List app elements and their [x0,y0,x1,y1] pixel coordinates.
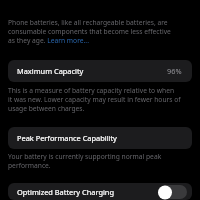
button[interactable]: Optimized Battery Charging toggle [158,185,187,199]
staticText: Your battery is currently supporting nor… [8,152,162,170]
button[interactable]: Maximum Capacity [8,60,192,82]
staticText: Peak Performance Capability [17,133,117,143]
button[interactable]: Peak Performance Capability [8,127,192,149]
staticText: Maximum Capacity [17,66,84,76]
staticText: 96% [167,66,182,76]
staticText: This is a measure of battery capacity re… [8,86,181,113]
button[interactable]: Optimized Battery Charging [8,183,192,200]
staticText: Optimized Battery Charging [17,187,114,197]
staticText: Phone batteries, like all rechargeable b… [8,18,171,45]
